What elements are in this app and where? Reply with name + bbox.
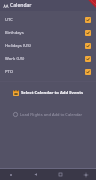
button[interactable]: Back [31,170,40,179]
button[interactable]: Holidays (US) [0,39,96,52]
button[interactable]: Home [56,170,65,179]
button[interactable]: UTC [0,13,96,26]
other: Sync [13,112,18,117]
button[interactable]: Calendar enabled [85,43,91,49]
button[interactable]: Recent apps [81,170,90,179]
staticText: Holidays (US) [5,43,31,49]
button[interactable]: Calendar enabled [85,17,91,23]
button[interactable]: Birthdays [0,26,96,39]
button[interactable]: Calendar enabled [85,69,91,75]
staticText: PTO [5,69,14,75]
staticText: UTC [5,17,13,23]
button[interactable]: Menu [6,170,15,179]
staticText: Birthdays [5,30,24,36]
staticText: Select Calendar to Add Events [21,90,84,96]
button[interactable]: Select Calendar to Add Events [10,88,87,98]
button[interactable]: Calendar enabled [85,30,91,36]
button[interactable]: Work (US) [0,52,96,65]
button[interactable]: PTO [0,65,96,78]
button[interactable]: Calendar enabled [85,56,91,62]
staticText: Work (US) [5,56,25,62]
staticText: Calendar [10,2,32,9]
button[interactable]: Sync [10,110,86,119]
staticText: Load Flights and Add to Calendar [20,112,83,117]
